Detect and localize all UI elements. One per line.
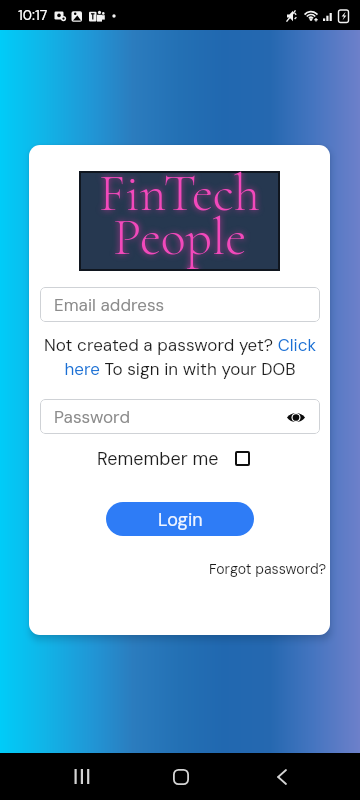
staticText: Login — [158, 508, 203, 531]
button[interactable]: Password — [40, 399, 320, 434]
button[interactable]: Back — [258, 753, 306, 800]
staticText: 10:17 — [18, 6, 48, 24]
staticText: Email address — [54, 294, 165, 316]
staticText: People — [113, 206, 247, 269]
button[interactable]: Home — [157, 753, 205, 800]
staticText: People — [113, 206, 247, 269]
staticText: FinTech — [99, 162, 260, 225]
staticText: Not created a password yet? Click here T… — [35, 334, 325, 381]
button[interactable]: Email address — [40, 287, 320, 322]
button[interactable]: Show password — [283, 404, 309, 430]
button[interactable]: Login — [106, 502, 254, 536]
staticText: Forgot password? — [209, 560, 327, 578]
staticText: FinTech — [99, 173, 260, 225]
button[interactable]: Remember me — [97, 446, 250, 470]
staticText: Remember me — [97, 447, 219, 470]
button[interactable]: Recents — [57, 753, 105, 800]
staticText: Password — [54, 406, 130, 428]
button[interactable]: Forgot password? — [209, 560, 327, 578]
